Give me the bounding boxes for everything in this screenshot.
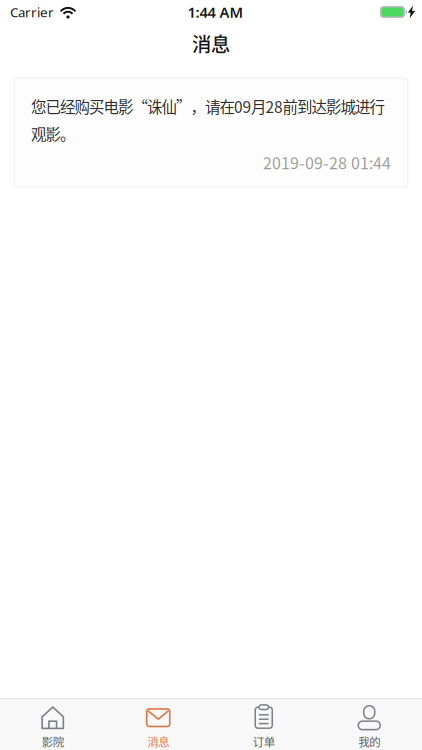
staticText: Carrier	[10, 3, 54, 21]
button[interactable]: 我的	[316, 696, 422, 750]
button[interactable]: 消息	[105, 696, 211, 750]
button[interactable]: 订单	[211, 696, 316, 750]
staticText: 2019-09-28 01:44	[263, 151, 391, 174]
staticText: 消息	[147, 733, 169, 750]
staticText: 消息	[192, 29, 230, 57]
staticText: 影院	[42, 733, 64, 750]
staticText: 订单	[253, 733, 275, 750]
button[interactable]: 您已经购买电影“诛仙”，请在09月28前到达影城进行观影。	[15, 79, 407, 186]
staticText: 您已经购买电影“诛仙”，请在09月28前到达影城进行观影。	[31, 95, 384, 145]
staticText: 我的	[358, 733, 380, 750]
button[interactable]: 影院	[0, 696, 105, 750]
staticText: 1:44 AM	[187, 2, 243, 22]
